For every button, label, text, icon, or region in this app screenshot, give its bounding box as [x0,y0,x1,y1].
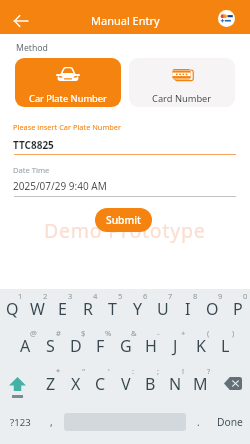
button[interactable]: ?123 [0,407,40,437]
staticText: C [95,373,106,395]
button[interactable]: O [200,296,225,321]
staticText: Y [133,298,143,320]
staticText: M [193,373,208,395]
staticText: " [82,366,86,376]
staticText: U [157,298,169,320]
staticText: K [196,335,206,357]
staticText: Method [16,42,48,54]
staticText: N [169,373,182,395]
staticText: H [145,335,157,357]
staticText: * [56,366,61,376]
button[interactable]: B [138,371,163,396]
button[interactable]: X [63,371,88,396]
button[interactable]: P [225,296,250,321]
staticText: 6 [143,291,148,301]
button[interactable]: I [175,296,200,321]
staticText: ; [157,366,160,376]
staticText: % [105,328,112,338]
staticText: 0 [243,291,248,301]
staticText: D [70,335,82,357]
staticText: 4 [93,291,98,301]
staticText: Manual Entry [91,13,160,28]
staticText: Date Time [13,165,50,175]
staticText: R [83,298,93,320]
button[interactable]: Z [38,371,63,396]
button[interactable]: K [188,333,213,358]
staticText: ) [232,328,235,338]
staticText: + [181,328,186,338]
staticText: ! [182,366,185,376]
staticText: Q [6,298,19,320]
staticText: Please insert Car Plate Number [13,122,122,132]
staticText: B [145,373,156,395]
staticText: ' [108,366,110,376]
staticText: E [58,298,67,320]
button[interactable]: S [38,333,63,358]
staticText: X [71,373,81,395]
button[interactable]: Period [188,407,208,437]
staticText: . [197,415,200,429]
staticText: ( [207,328,210,338]
staticText: 7 [168,291,173,301]
staticText: ? [207,366,211,376]
button[interactable]: E [50,296,75,321]
button[interactable]: Comma [40,407,62,437]
staticText: 2025/07/29 9:40 AM [13,179,107,193]
button[interactable]: A [13,333,38,358]
button[interactable]: Accepted cards [218,10,235,27]
staticText: Demo Prototype [44,217,206,244]
staticText: $ [81,328,86,338]
staticText: Done [217,415,243,429]
staticText: # [56,328,61,338]
button[interactable]: N [163,371,188,396]
staticText: G [120,335,132,357]
staticText: V [121,373,131,395]
button[interactable]: G [113,333,138,358]
button[interactable]: D [63,333,88,358]
button[interactable]: Done [210,407,250,437]
staticText: 3 [68,291,73,301]
staticText: TTC8825 [13,138,54,152]
button[interactable]: R [75,296,100,321]
staticText: S [46,335,55,357]
button[interactable]: Shift [0,369,37,397]
button[interactable]: Backspace [213,369,250,397]
button[interactable]: V [113,371,138,396]
staticText: O [206,298,219,320]
button[interactable]: Card Number [129,58,235,107]
staticText: Card Number [152,92,212,105]
staticText: L [221,335,230,357]
button[interactable]: L [213,333,238,358]
staticText: @ [30,328,37,338]
button[interactable]: C [88,371,113,396]
staticText: & [131,328,137,338]
button[interactable]: T [100,296,125,321]
staticText: 8 [193,291,198,301]
button[interactable]: Submit [95,208,152,232]
staticText: Car Plate Number [29,92,107,105]
staticText: F [96,335,105,357]
button[interactable]: U [150,296,175,321]
staticText: Z [46,373,56,395]
button[interactable]: H [138,333,163,358]
button[interactable]: Q [0,296,25,321]
button[interactable]: Car Plate Number [15,58,121,107]
staticText: 5 [118,291,123,301]
staticText: 9 [218,291,223,301]
staticText: ?123 [10,416,31,429]
button[interactable]: J [163,333,188,358]
button[interactable]: W [25,296,50,321]
staticText: P [233,298,243,320]
button[interactable]: Back [8,8,33,33]
button[interactable]: F [88,333,113,358]
staticText: , [50,415,53,429]
button[interactable]: M [188,371,213,396]
staticText: 2 [43,291,48,301]
button[interactable]: Y [125,296,150,321]
staticText: 1 [18,291,23,301]
staticText: : [132,366,135,376]
staticText: I [185,298,191,320]
staticText: T [108,298,117,320]
staticText: Submit [106,213,141,227]
